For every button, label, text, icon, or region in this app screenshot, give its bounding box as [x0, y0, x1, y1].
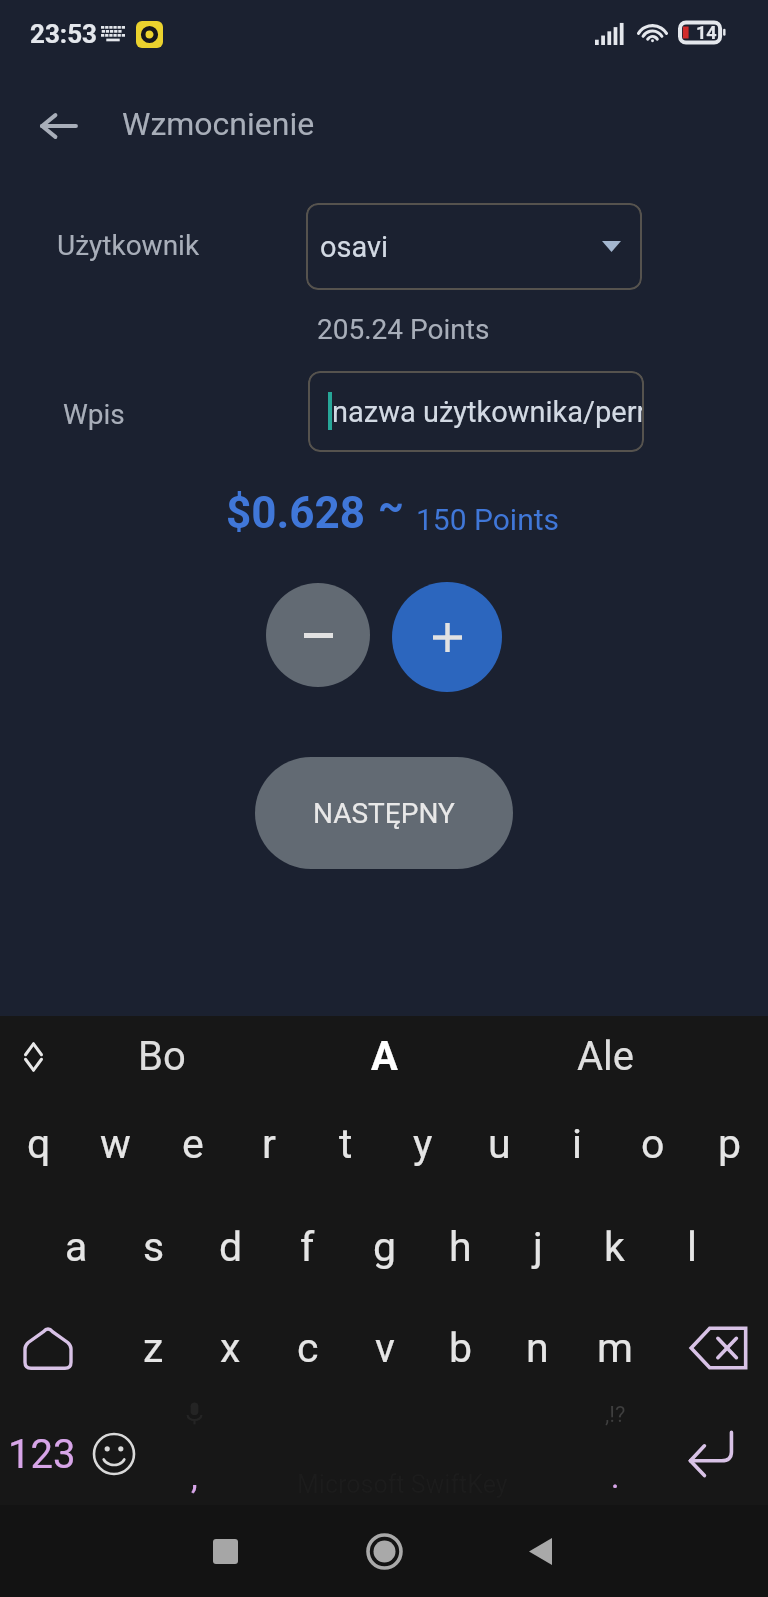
- button[interactable]: n: [499, 1300, 576, 1396]
- button[interactable]: a: [38, 1199, 115, 1295]
- staticText: o: [641, 1120, 665, 1168]
- staticText: e: [182, 1120, 204, 1168]
- button[interactable]: h: [422, 1199, 499, 1295]
- button[interactable]: Period: [585, 1401, 645, 1497]
- staticText: a: [65, 1223, 88, 1271]
- button[interactable]: s: [115, 1199, 192, 1295]
- staticText: $0.628: [226, 487, 365, 539]
- staticText: l: [687, 1223, 697, 1271]
- button[interactable]: x: [192, 1300, 269, 1396]
- staticText: nazwa użytkownika/perr: [332, 395, 644, 429]
- staticText: v: [375, 1324, 395, 1372]
- staticText: Bo: [138, 1033, 186, 1080]
- button[interactable]: Recents: [193, 1519, 257, 1583]
- button[interactable]: Enter: [676, 1406, 748, 1502]
- button[interactable]: v: [346, 1300, 423, 1396]
- button[interactable]: e: [154, 1096, 231, 1192]
- button[interactable]: g: [346, 1199, 423, 1295]
- button[interactable]: w: [77, 1096, 154, 1192]
- staticText: r: [262, 1120, 276, 1168]
- button[interactable]: Back: [508, 1519, 572, 1583]
- staticText: ,!?: [605, 1402, 626, 1428]
- staticText: k: [604, 1223, 625, 1271]
- button[interactable]: i: [538, 1096, 615, 1192]
- staticText: A: [371, 1033, 398, 1080]
- button[interactable]: NASTĘPNY: [255, 757, 513, 869]
- staticText: 150 Points: [416, 502, 560, 537]
- button[interactable]: d: [192, 1199, 269, 1295]
- staticText: b: [449, 1324, 473, 1372]
- button[interactable]: t: [307, 1096, 384, 1192]
- button[interactable]: u: [461, 1096, 538, 1192]
- staticText: Ale: [577, 1033, 635, 1080]
- staticText: f: [300, 1223, 315, 1271]
- staticText: s: [143, 1223, 165, 1271]
- staticText: Użytkownik: [57, 229, 200, 262]
- staticText: Wzmocnienie: [122, 105, 315, 143]
- staticText: .: [611, 1458, 620, 1496]
- button[interactable]: j: [499, 1199, 576, 1295]
- staticText: q: [27, 1120, 51, 1168]
- button[interactable]: z: [115, 1300, 192, 1396]
- staticText: 14: [696, 22, 717, 43]
- button[interactable]: m: [576, 1300, 653, 1396]
- staticText: 205.24 Points: [317, 313, 490, 346]
- staticText: w: [100, 1120, 131, 1168]
- button[interactable]: osavi: [306, 203, 642, 290]
- staticText: Wpis: [63, 398, 125, 431]
- staticText: u: [488, 1120, 511, 1168]
- button[interactable]: Shift: [11, 1300, 85, 1396]
- staticText: z: [143, 1324, 164, 1372]
- staticText: i: [572, 1120, 582, 1168]
- button[interactable]: Ale: [577, 1033, 635, 1080]
- button[interactable]: Increase: [392, 582, 502, 692]
- button[interactable]: nazwa użytkownika/perr: [308, 371, 644, 452]
- button[interactable]: Comma: [164, 1401, 224, 1497]
- button[interactable]: q: [0, 1096, 77, 1192]
- button[interactable]: A: [371, 1033, 398, 1080]
- staticText: h: [449, 1223, 472, 1271]
- button[interactable]: Decrease: [266, 583, 370, 687]
- button[interactable]: p: [691, 1096, 768, 1192]
- staticText: p: [718, 1120, 742, 1168]
- staticText: d: [219, 1223, 243, 1271]
- button[interactable]: c: [269, 1300, 346, 1396]
- staticText: osavi: [320, 230, 389, 264]
- staticText: n: [526, 1324, 549, 1372]
- staticText: 23:53: [30, 19, 97, 49]
- staticText: ~: [378, 483, 404, 530]
- staticText: y: [413, 1120, 433, 1168]
- staticText: ,: [191, 1457, 198, 1497]
- staticText: x: [220, 1324, 241, 1372]
- button[interactable]: y: [384, 1096, 461, 1192]
- button[interactable]: Bo: [138, 1033, 186, 1080]
- staticText: NASTĘPNY: [313, 797, 455, 830]
- button[interactable]: Numbers: [7, 1406, 77, 1502]
- button[interactable]: l: [653, 1199, 730, 1295]
- button[interactable]: f: [269, 1199, 346, 1295]
- button[interactable]: b: [422, 1300, 499, 1396]
- staticText: j: [533, 1223, 543, 1271]
- button[interactable]: r: [230, 1096, 307, 1192]
- button[interactable]: k: [576, 1199, 653, 1295]
- staticText: 123: [8, 1431, 76, 1478]
- staticText: c: [297, 1324, 319, 1372]
- button[interactable]: o: [614, 1096, 691, 1192]
- button[interactable]: Backspace: [682, 1300, 756, 1396]
- staticText: m: [597, 1324, 633, 1372]
- button[interactable]: Expand toolbar: [9, 1033, 57, 1081]
- button[interactable]: Home: [352, 1519, 416, 1583]
- button[interactable]: Back: [28, 98, 90, 154]
- staticText: g: [373, 1223, 397, 1271]
- staticText: t: [339, 1120, 353, 1168]
- button[interactable]: Emoji: [87, 1406, 141, 1502]
